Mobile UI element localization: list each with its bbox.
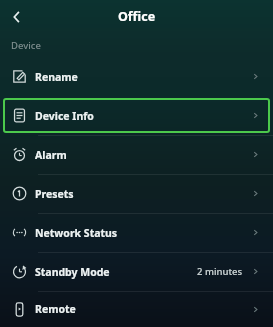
button[interactable]: Presets (0, 174, 273, 213)
staticText: Standby Mode (35, 265, 110, 279)
button[interactable]: Remote (0, 291, 273, 327)
staticText: Alarm (35, 148, 67, 162)
button[interactable]: Network Status (0, 213, 273, 252)
staticText: Presets (35, 187, 74, 201)
staticText: Office (0, 8, 273, 25)
staticText: Rename (35, 70, 78, 84)
button[interactable]: Device Info (3, 98, 270, 133)
button[interactable]: Standby Mode (0, 252, 273, 291)
staticText: Network Status (35, 226, 118, 240)
staticText: Device Info (35, 109, 94, 123)
staticText: Remote (35, 302, 76, 316)
button[interactable]: Rename (0, 57, 273, 96)
button[interactable]: Back (0, 0, 34, 33)
button[interactable]: Alarm (0, 135, 273, 174)
staticText: Device (11, 39, 41, 52)
staticText: 2 minutes (197, 265, 243, 278)
